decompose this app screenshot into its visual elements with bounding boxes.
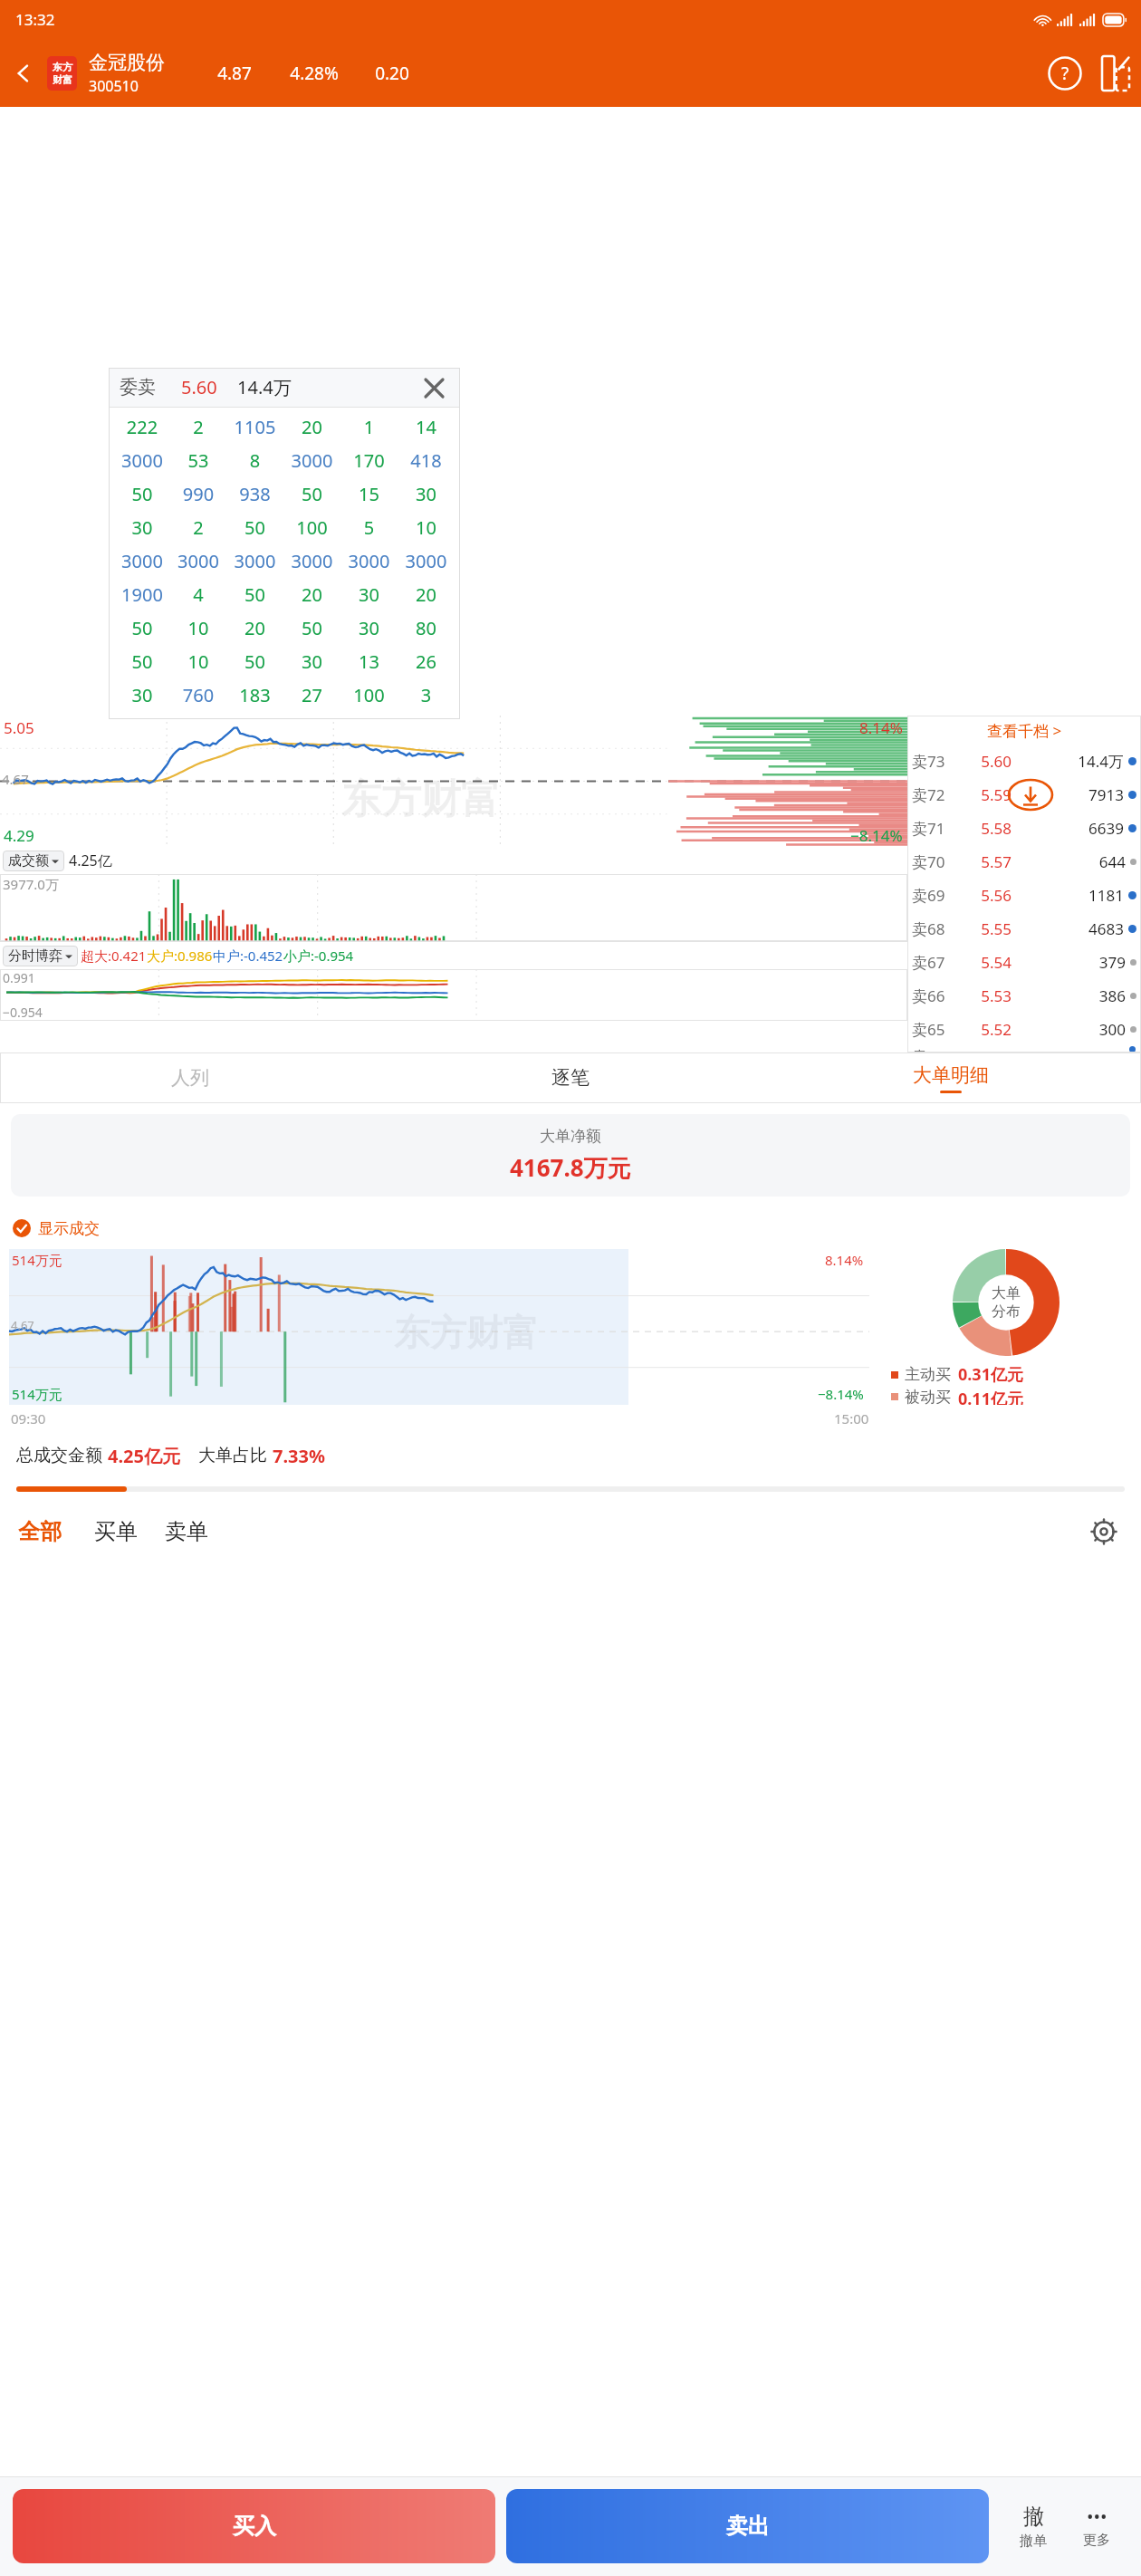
button[interactable]: 卖65 bbox=[907, 1013, 1141, 1046]
staticText: 5.57 bbox=[961, 851, 1012, 872]
staticText: 4.67 bbox=[11, 1317, 34, 1333]
button[interactable]: 卖单 bbox=[163, 1513, 210, 1551]
staticText: −8.14% bbox=[818, 1385, 864, 1403]
staticText: 卖73 bbox=[912, 751, 961, 772]
staticText: 8.14% bbox=[825, 1251, 864, 1269]
button[interactable]: 大单净额 bbox=[11, 1114, 1130, 1197]
button[interactable]: 卖66 bbox=[907, 979, 1141, 1013]
staticText: 50 bbox=[114, 482, 170, 506]
button[interactable]: 全部 bbox=[16, 1513, 63, 1551]
staticText: 显示成交 bbox=[38, 1219, 100, 1238]
staticText: 5.05 bbox=[4, 717, 34, 738]
staticText: 5.56 bbox=[961, 885, 1012, 906]
staticText: 10 bbox=[398, 515, 455, 540]
button[interactable]: Help bbox=[1040, 48, 1090, 99]
staticText: 3000 bbox=[283, 549, 340, 573]
staticText: 3 bbox=[398, 683, 455, 707]
button[interactable]: 大单明细 bbox=[761, 1053, 1141, 1103]
staticText: 514万元 bbox=[12, 1385, 62, 1403]
staticText: 7.33% bbox=[273, 1444, 325, 1468]
button[interactable]: 卖68 bbox=[907, 912, 1141, 946]
staticText: 5.53 bbox=[961, 985, 1012, 1006]
staticText: 09:30 bbox=[11, 1409, 46, 1427]
button[interactable]: 卖64 bbox=[907, 1046, 1141, 1053]
button[interactable]: 卖71 bbox=[907, 812, 1141, 845]
staticText: 50 bbox=[226, 582, 283, 607]
staticText: −0.954 bbox=[3, 1004, 43, 1021]
staticText: 514万元 bbox=[12, 1251, 62, 1269]
staticText: 80 bbox=[398, 616, 455, 640]
staticText: 5.60 bbox=[961, 751, 1012, 772]
staticText: 东方财富 bbox=[341, 774, 501, 824]
staticText: 30 bbox=[283, 649, 340, 674]
staticText: 金冠股份 bbox=[89, 51, 165, 74]
button[interactable]: 卖73 bbox=[907, 745, 1141, 778]
staticText: 5.52 bbox=[961, 1019, 1012, 1040]
staticText: 20 bbox=[398, 582, 455, 607]
staticText: 50 bbox=[114, 649, 170, 674]
staticText: 全部 bbox=[18, 1518, 62, 1545]
button[interactable]: 东方 bbox=[47, 56, 77, 91]
button[interactable]: Fullscreen bbox=[1090, 48, 1141, 99]
staticText: 938 bbox=[226, 482, 283, 506]
button[interactable]: Settings bbox=[1083, 1511, 1125, 1552]
button[interactable]: Close bbox=[418, 372, 449, 403]
staticText: 4.67 bbox=[2, 770, 29, 788]
staticText: 10 bbox=[170, 649, 226, 674]
staticText: 170 bbox=[340, 448, 398, 473]
button[interactable]: 卖69 bbox=[907, 879, 1141, 912]
staticText: 1181 bbox=[1016, 885, 1124, 906]
staticText: 4683 bbox=[1016, 918, 1124, 939]
staticText: 14.4万 bbox=[237, 375, 292, 399]
button[interactable]: 买单 bbox=[92, 1513, 139, 1551]
staticText: 被动买 bbox=[905, 1388, 951, 1405]
staticText: 26 bbox=[398, 649, 455, 674]
staticText: 大户:0.986 bbox=[147, 947, 213, 965]
staticText: 大单占比 bbox=[198, 1445, 267, 1466]
staticText: 760 bbox=[170, 683, 226, 707]
button[interactable]: 显示成交 bbox=[13, 1207, 1141, 1249]
button[interactable]: 卖70 bbox=[907, 845, 1141, 879]
button[interactable]: Back bbox=[0, 39, 47, 107]
staticText: 分时博弈 bbox=[8, 947, 62, 965]
button[interactable]: 卖出 bbox=[506, 2489, 989, 2563]
staticText: 7913 bbox=[1016, 784, 1124, 805]
staticText: 10 bbox=[170, 616, 226, 640]
staticText: 20 bbox=[226, 616, 283, 640]
staticText: 卖66 bbox=[912, 985, 961, 1006]
button[interactable]: 逐笔 bbox=[380, 1053, 761, 1103]
button[interactable]: 人列 bbox=[0, 1053, 380, 1103]
staticText: ? bbox=[1061, 62, 1069, 85]
staticText: 13 bbox=[340, 649, 398, 674]
staticText: 100 bbox=[340, 683, 398, 707]
button[interactable]: 买入 bbox=[13, 2489, 495, 2563]
staticText: 379 bbox=[1016, 952, 1126, 973]
staticText: 买入 bbox=[233, 2513, 276, 2540]
staticText: 东方 bbox=[53, 61, 72, 73]
staticText: 分布 bbox=[992, 1302, 1021, 1321]
staticText: 卖64 bbox=[912, 1046, 961, 1053]
staticText: 3000 bbox=[114, 549, 170, 573]
staticText: ••• bbox=[1087, 2504, 1107, 2529]
staticText: 4167.8万元 bbox=[510, 1151, 631, 1184]
button[interactable]: 撤 bbox=[1002, 2489, 1065, 2563]
staticText: 1296 bbox=[1016, 1046, 1124, 1053]
staticText: 小户:-0.954 bbox=[283, 947, 354, 965]
button[interactable]: 查看千档 > bbox=[907, 716, 1141, 745]
button[interactable]: 分时博弈 bbox=[3, 946, 78, 966]
staticText: 3000 bbox=[340, 549, 398, 573]
button[interactable]: 卖67 bbox=[907, 946, 1141, 979]
staticText: 委卖 bbox=[120, 376, 156, 399]
staticText: 卖68 bbox=[912, 918, 961, 939]
button[interactable]: 成交额 bbox=[3, 851, 64, 871]
staticText: 14.4万 bbox=[1016, 751, 1124, 772]
button[interactable]: 卖72 bbox=[907, 778, 1141, 812]
staticText: 4.29 bbox=[4, 825, 34, 846]
staticText: 总成交金额 bbox=[16, 1445, 102, 1466]
staticText: 更多 bbox=[1083, 2532, 1110, 2549]
staticText: 撤 bbox=[1023, 2504, 1044, 2530]
staticText: 30 bbox=[114, 515, 170, 540]
staticText: 4.28% bbox=[277, 62, 351, 85]
button[interactable]: ••• bbox=[1065, 2489, 1128, 2563]
staticText: 3000 bbox=[283, 448, 340, 473]
